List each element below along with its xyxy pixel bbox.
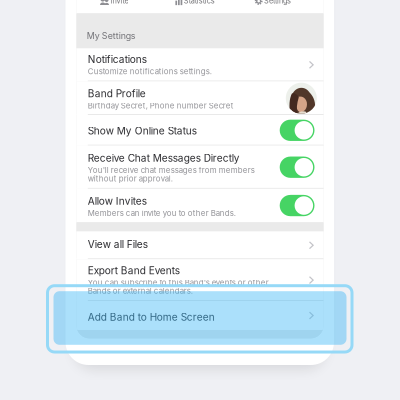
staticText: You'll receive chat messages from member… <box>88 165 255 175</box>
button[interactable]: Statistics <box>175 0 215 12</box>
staticText: You can subscribe to this Band's events … <box>88 278 269 287</box>
button[interactable]: View all Files <box>76 231 323 259</box>
staticText: View all Files <box>88 238 148 250</box>
staticText: Add Band to Home Screen <box>88 311 215 323</box>
button[interactable]: Show My Online Status <box>76 115 323 146</box>
button[interactable]: Invite <box>100 0 128 12</box>
button[interactable]: Allow Invites <box>76 189 323 222</box>
button[interactable]: Add Band to Home Screen <box>76 301 323 330</box>
button[interactable]: Receive Chat Messages Directly <box>76 146 323 189</box>
staticText: Birthday Secret, Phone number Secret <box>88 101 234 110</box>
staticText: My Settings <box>87 30 136 41</box>
button[interactable]: Settings <box>255 0 291 12</box>
staticText: Settings <box>264 0 291 5</box>
button[interactable]: Export Band Events <box>76 259 323 301</box>
staticText: Invite <box>110 0 128 5</box>
button[interactable]: Notifications <box>76 48 323 81</box>
button[interactable]: Band Profile <box>76 81 323 115</box>
staticText: Statistics <box>184 0 215 5</box>
staticText: without prior approval. <box>88 174 173 183</box>
staticText: Bands or external calendars. <box>88 286 193 296</box>
staticText: Members can invite you to other Bands. <box>88 208 236 218</box>
staticText: Show My Online Status <box>88 125 197 137</box>
staticText: Receive Chat Messages Directly <box>88 152 240 164</box>
staticText: Allow Invites <box>88 195 147 207</box>
staticText: Customize notifications settings. <box>88 67 212 76</box>
staticText: Export Band Events <box>88 264 180 277</box>
staticText: Band Profile <box>88 87 146 100</box>
staticText: Notifications <box>88 53 147 65</box>
